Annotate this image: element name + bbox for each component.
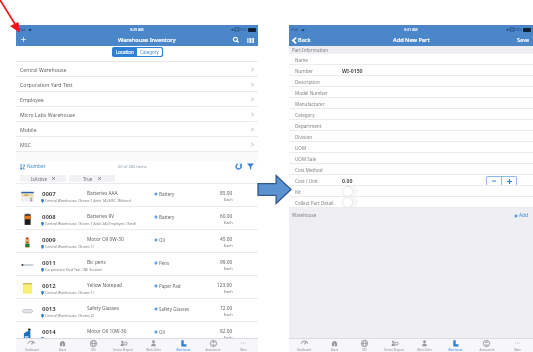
button[interactable]: Department [289,120,533,131]
staticText: Each [224,266,233,271]
staticText: 45.00 [220,236,233,243]
staticText: Part Information [292,47,329,53]
button[interactable]: Work Order [409,339,440,352]
staticText: 85.00 [220,190,233,197]
button[interactable]: Asset [319,339,349,352]
button[interactable]: Number [20,163,46,170]
button[interactable]: Dashboard [16,339,47,352]
staticText: 60.00 [220,213,233,220]
button[interactable]: 0007 [16,184,258,207]
button[interactable]: Assessment [198,339,228,352]
staticText: Central Warehouse- (Stores 1) [45,244,94,249]
button[interactable]: Service Request [108,339,138,352]
staticText: Employee [20,96,44,103]
staticText: Batteries AAA [87,190,118,197]
button[interactable]: Work Order [138,339,168,352]
button[interactable]: Number [289,65,533,76]
staticText: Warehouse [292,212,317,218]
staticText: IsActive [31,176,47,182]
button[interactable]: Increase cost [502,177,516,185]
staticText: Motor Oil 10W-30 [87,328,127,335]
button[interactable]: Save [517,36,530,44]
button[interactable]: 0014 [16,322,258,345]
button[interactable]: Refresh [234,162,243,171]
staticText: Asset [59,348,66,352]
button[interactable]: GIS [349,339,379,352]
button[interactable]: Category [289,109,533,120]
staticText: Corporation Yard Test [20,81,73,88]
staticText: 9:31 AM [404,27,418,32]
button[interactable]: Warehouse [168,339,198,352]
button[interactable]: Kit [342,186,358,197]
button[interactable]: Service Request [379,339,409,352]
button[interactable]: Central Warehouse [16,62,258,77]
button[interactable]: Asset [47,339,78,352]
staticText: Category [140,49,159,55]
button[interactable]: Name [289,54,533,65]
staticText: Mobile [20,126,37,133]
button[interactable]: More [502,339,533,352]
staticText: Oil [159,237,165,243]
staticText: Micro Labs Warehouse [20,111,76,118]
staticText: Add New Part [393,36,430,44]
staticText: Number [27,163,46,170]
button[interactable]: Model Number [289,87,533,98]
staticText: 95% [240,27,247,32]
button[interactable]: Manufacturer [289,98,533,109]
button[interactable]: More [228,339,258,352]
button[interactable]: Back [292,36,311,44]
button[interactable]: Decrease cost [487,177,501,185]
staticText: Cost Method [295,167,323,173]
staticText: Division [295,134,313,140]
button[interactable]: Division [289,131,533,142]
button[interactable]: UOM [289,142,533,153]
staticText: Collect Part Detail [295,200,334,206]
button[interactable]: GIS [78,339,108,352]
button[interactable]: Description [289,76,533,87]
staticText: 0007 [42,190,56,198]
staticText: 0009 [42,236,56,244]
staticText: 0008 [42,213,56,221]
staticText: True [83,176,93,182]
button[interactable]: 0009 [16,230,258,253]
button[interactable]: Location [116,49,134,55]
button[interactable]: Add [514,212,528,219]
button[interactable]: Mobile [16,122,258,137]
button[interactable]: Assessment [471,339,502,352]
button[interactable]: IsActive [20,175,66,182]
staticText: 82.00 [220,328,233,335]
staticText: Save [517,36,530,44]
staticText: 99.00 [220,259,233,266]
button[interactable]: Cost Method [289,164,533,175]
staticText: Department [295,123,322,129]
button[interactable]: Micro Labs Warehouse [16,107,258,122]
button[interactable]: Warehouse [440,339,471,352]
staticText: Manufacturer [295,101,325,107]
button[interactable]: Corporation Yard Test [16,77,258,92]
staticText: Central Warehouse- (Stores 1,Aisle 1A),M… [45,198,132,203]
button[interactable]: 0011 [16,253,258,276]
staticText: Safety Glasses [87,305,120,312]
button[interactable]: Filter [246,162,255,171]
button[interactable]: Employee [16,92,258,107]
staticText: Dashboard [25,348,39,352]
button[interactable]: MSC [16,137,258,152]
button[interactable]: Dashboard [289,339,319,352]
button[interactable]: 0008 [16,207,258,230]
button[interactable]: True [69,175,115,182]
button[interactable]: UOM Sale [289,153,533,164]
button[interactable]: 0013 [16,299,258,322]
staticText: Asset [331,348,338,352]
staticText: GIS [91,348,96,352]
button[interactable]: Search [231,35,241,45]
button[interactable]: Category [140,49,159,55]
staticText: Service Request [384,348,404,352]
button[interactable]: 0012 [16,276,258,299]
staticText: Motor Oil 0W-30 [87,236,124,243]
button[interactable]: Scan barcode [245,35,255,45]
button[interactable]: Add item [18,34,29,45]
button[interactable]: Collect Part Detail [342,197,358,208]
staticText: 20 of 260 items [118,164,147,169]
staticText: GIS [362,348,367,352]
staticText: Oil [159,329,165,335]
